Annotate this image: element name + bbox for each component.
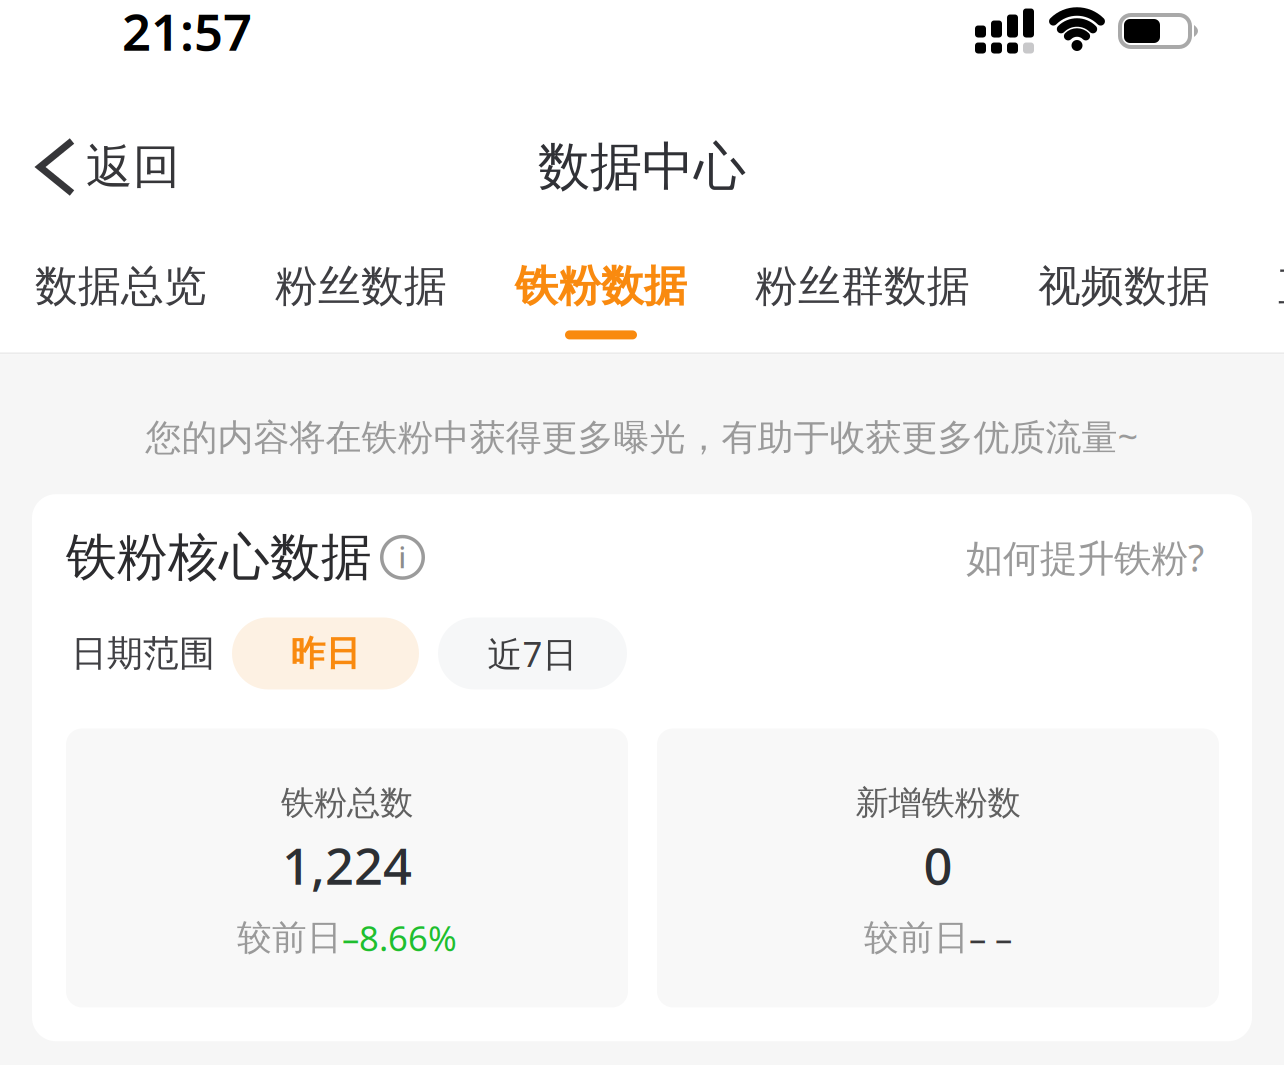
button[interactable]: 铁粉核心数据说明: [372, 535, 425, 580]
staticText: 铁粉总数: [281, 782, 413, 823]
staticText: 铁粉数据: [515, 260, 687, 312]
staticText: i: [398, 539, 406, 576]
button[interactable]: 视频数据: [1038, 260, 1210, 339]
button[interactable]: 直播数据: [1278, 260, 1284, 339]
staticText: 粉丝数据: [275, 260, 447, 312]
staticText: 数据中心: [538, 135, 746, 199]
staticText: 0: [923, 831, 952, 899]
staticText: 较前日: [864, 916, 969, 959]
staticText: – –: [969, 915, 1012, 961]
button[interactable]: 粉丝群数据: [755, 260, 970, 339]
button[interactable]: 数据总览: [35, 260, 207, 339]
button[interactable]: 返回: [40, 138, 180, 196]
button[interactable]: 昨日: [232, 617, 419, 689]
staticText: 21:57: [122, 0, 252, 65]
button[interactable]: 粉丝数据: [275, 260, 447, 339]
button[interactable]: 铁粉数据: [515, 260, 687, 339]
staticText: 数据总览: [35, 260, 207, 312]
staticText: 1,224: [282, 831, 412, 899]
staticText: 返回: [86, 138, 180, 196]
staticText: 视频数据: [1038, 260, 1210, 312]
staticText: 近7日: [487, 630, 577, 676]
staticText: 您的内容将在铁粉中获得更多曝光，有助于收获更多优质流量~: [145, 412, 1138, 460]
staticText: 如何提升铁粉?: [966, 532, 1204, 582]
staticText: 昨日: [290, 632, 360, 675]
staticText: 日期范围: [71, 631, 215, 675]
staticText: 直播数据: [1278, 260, 1284, 312]
staticText: –8.66%: [342, 915, 457, 961]
staticText: 较前日: [237, 916, 342, 959]
button[interactable]: 近7日: [438, 617, 627, 689]
staticText: 铁粉核心数据: [66, 526, 372, 588]
staticText: 新增铁粉数: [855, 782, 1020, 823]
staticText: 粉丝群数据: [755, 260, 970, 312]
button[interactable]: 如何提升铁粉?: [966, 532, 1204, 582]
